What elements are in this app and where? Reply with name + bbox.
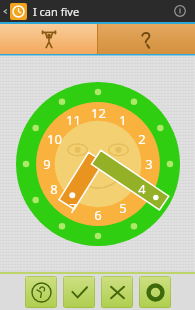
staticText: 9 [43, 155, 51, 173]
staticText: 5 [119, 199, 127, 217]
button[interactable]: Reject [101, 276, 133, 308]
staticText: 3 [145, 155, 153, 173]
button[interactable]: 12 [16, 82, 180, 246]
other: About [174, 5, 186, 17]
button[interactable]: Back [0, 0, 10, 22]
staticText: 6 [94, 206, 102, 224]
button[interactable]: Help [98, 24, 195, 54]
button[interactable]: Hint [25, 276, 57, 308]
button[interactable]: Exercise [0, 24, 97, 54]
staticText: I can five [33, 4, 80, 19]
button[interactable]: App icon [10, 3, 27, 20]
staticText: 2 [138, 130, 146, 148]
button[interactable]: About [169, 0, 191, 22]
button[interactable]: Reset [139, 276, 171, 308]
staticText: 12 [91, 104, 106, 122]
staticText: 11 [66, 111, 81, 129]
staticText: 1 [119, 111, 127, 129]
staticText: 4 [138, 180, 146, 198]
other: Exercise [38, 28, 60, 50]
staticText: 8 [50, 180, 58, 198]
other: Back [2, 8, 9, 15]
staticText: 7 [69, 199, 77, 217]
other: App icon [12, 5, 25, 18]
button[interactable]: Accept [63, 276, 95, 308]
other: Help [137, 30, 156, 49]
staticText: 10 [47, 130, 62, 148]
